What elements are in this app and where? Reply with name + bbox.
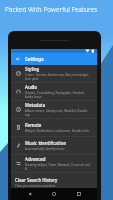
staticText: Colors, Themes, Button size, Blur, text … <box>25 73 91 81</box>
staticText: Remote <box>25 122 42 128</box>
button[interactable]: Back <box>24 188 36 200</box>
staticText: Widget, Notification, Lockscreen, Double… <box>25 129 89 133</box>
staticText: Haptics, Crossfading, Replaygain, Headse… <box>25 91 91 99</box>
staticText: Floating widget, Timer, Network, Pause o… <box>25 163 91 171</box>
staticText: Automatically identify music <box>25 147 65 151</box>
staticText: Advanced <box>25 156 46 162</box>
staticText: Music identification <box>25 140 67 146</box>
button[interactable]: Back <box>11 53 97 65</box>
staticText: Settings <box>25 56 44 63</box>
button[interactable]: Music identification <box>11 137 97 155</box>
button[interactable]: Advanced <box>11 155 97 173</box>
button[interactable]: Clear Search History <box>11 173 97 188</box>
staticText: Packed With Powerful Features <box>5 5 98 14</box>
staticText: Metadata <box>25 102 46 108</box>
button[interactable]: Styling <box>11 65 97 83</box>
button[interactable]: Recents <box>73 188 85 200</box>
button[interactable]: Remote <box>11 119 97 137</box>
button[interactable]: Audio <box>11 83 97 101</box>
button[interactable]: Back <box>11 53 25 65</box>
staticText: Styling <box>25 66 40 72</box>
button[interactable]: Home <box>48 188 60 200</box>
staticText: Clear Search History <box>15 177 58 183</box>
staticText: Album covers, Library scan, Blacklist, D… <box>25 109 91 117</box>
staticText: Audio <box>25 84 38 90</box>
staticText: Clear your previous searches <box>15 184 56 188</box>
button[interactable]: Metadata <box>11 101 97 119</box>
